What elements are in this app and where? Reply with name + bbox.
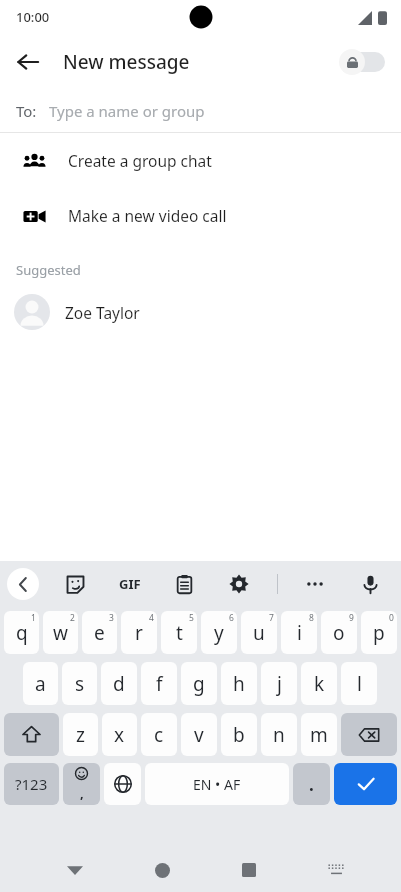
button[interactable]: p: [361, 611, 397, 654]
staticText: 7: [269, 612, 274, 624]
staticText: s: [75, 671, 85, 697]
staticText: Type a name or group: [49, 101, 205, 121]
staticText: To:: [16, 101, 37, 121]
staticText: a: [35, 671, 46, 697]
staticText: 9: [349, 612, 354, 624]
button[interactable]: Stickers: [58, 567, 92, 601]
staticText: 4: [149, 612, 154, 624]
staticText: p: [373, 620, 385, 646]
button[interactable]: Encryption toggle: [339, 47, 389, 77]
staticText: Suggested: [16, 261, 81, 279]
button[interactable]: Symbols: [4, 763, 59, 805]
button[interactable]: Zoe Taylor: [0, 283, 401, 341]
staticText: k: [314, 671, 325, 697]
staticText: w: [53, 620, 68, 646]
staticText: m: [310, 722, 328, 748]
staticText: t: [176, 620, 183, 646]
button[interactable]: Shift: [4, 713, 59, 756]
staticText: x: [114, 722, 125, 748]
button[interactable]: g: [181, 662, 217, 705]
button[interactable]: Settings: [222, 567, 256, 601]
button[interactable]: Send: [334, 763, 397, 805]
button[interactable]: Home: [142, 850, 182, 890]
staticText: y: [214, 620, 224, 646]
button[interactable]: Clipboard: [167, 567, 201, 601]
button[interactable]: Create a group chat: [0, 133, 401, 188]
staticText: l: [357, 671, 362, 697]
button[interactable]: Make a new video call: [0, 188, 401, 243]
button[interactable]: i: [281, 611, 317, 654]
staticText: 8: [309, 612, 314, 624]
staticText: c: [154, 722, 164, 748]
staticText: q: [16, 620, 28, 646]
button[interactable]: l: [341, 662, 377, 705]
staticText: Make a new video call: [68, 205, 227, 226]
staticText: g: [193, 671, 205, 697]
staticText: ,: [80, 784, 84, 802]
button[interactable]: r: [121, 611, 157, 654]
button[interactable]: More options: [298, 567, 332, 601]
staticText: 1: [31, 612, 36, 624]
staticText: New message: [63, 49, 190, 75]
button[interactable]: To:: [0, 90, 401, 132]
button[interactable]: s: [62, 662, 97, 705]
button[interactable]: f: [141, 662, 177, 705]
staticText: 2: [70, 612, 75, 624]
staticText: .: [309, 773, 314, 796]
staticText: o: [333, 620, 345, 646]
button[interactable]: Back: [6, 40, 50, 84]
button[interactable]: k: [301, 662, 337, 705]
button[interactable]: v: [181, 713, 217, 756]
button[interactable]: c: [141, 713, 177, 756]
staticText: e: [94, 620, 105, 646]
staticText: ?123: [15, 774, 48, 794]
button[interactable]: o: [321, 611, 357, 654]
staticText: n: [273, 722, 285, 748]
staticText: h: [233, 671, 245, 697]
button[interactable]: Backspace: [341, 713, 397, 756]
button[interactable]: Switch keyboard: [316, 850, 356, 890]
staticText: Zoe Taylor: [65, 302, 140, 323]
staticText: v: [194, 722, 204, 748]
button[interactable]: Change language: [104, 763, 141, 805]
button[interactable]: e: [82, 611, 117, 654]
staticText: 6: [229, 612, 234, 624]
button[interactable]: w: [43, 611, 78, 654]
button[interactable]: Emoji and comma: [63, 763, 100, 805]
staticText: 10:00: [16, 8, 50, 26]
button[interactable]: u: [241, 611, 277, 654]
staticText: z: [76, 722, 85, 748]
button[interactable]: h: [221, 662, 257, 705]
staticText: j: [277, 671, 282, 697]
button[interactable]: j: [261, 662, 297, 705]
button[interactable]: Recents: [229, 850, 269, 890]
button[interactable]: m: [301, 713, 337, 756]
button[interactable]: n: [261, 713, 297, 756]
button[interactable]: Expand toolbar: [7, 568, 39, 600]
button[interactable]: Space: [145, 763, 289, 805]
staticText: Create a group chat: [68, 150, 212, 171]
staticText: b: [233, 722, 245, 748]
button[interactable]: Hide keyboard: [55, 850, 95, 890]
button[interactable]: b: [221, 713, 257, 756]
staticText: f: [156, 671, 163, 697]
staticText: 0: [389, 612, 394, 624]
staticText: EN • AF: [193, 775, 241, 794]
staticText: GIF: [119, 575, 141, 593]
button[interactable]: a: [23, 662, 58, 705]
button[interactable]: y: [201, 611, 237, 654]
staticText: i: [297, 620, 302, 646]
button[interactable]: Voice input: [353, 567, 387, 601]
button[interactable]: x: [102, 713, 137, 756]
staticText: r: [135, 620, 143, 646]
staticText: d: [113, 671, 125, 697]
button[interactable]: t: [161, 611, 197, 654]
button[interactable]: GIF: [113, 567, 147, 601]
button[interactable]: d: [101, 662, 137, 705]
button[interactable]: q: [4, 611, 39, 654]
button[interactable]: z: [63, 713, 98, 756]
button[interactable]: Period: [293, 763, 330, 805]
staticText: u: [253, 620, 265, 646]
staticText: 5: [189, 612, 194, 624]
staticText: 3: [109, 612, 114, 624]
